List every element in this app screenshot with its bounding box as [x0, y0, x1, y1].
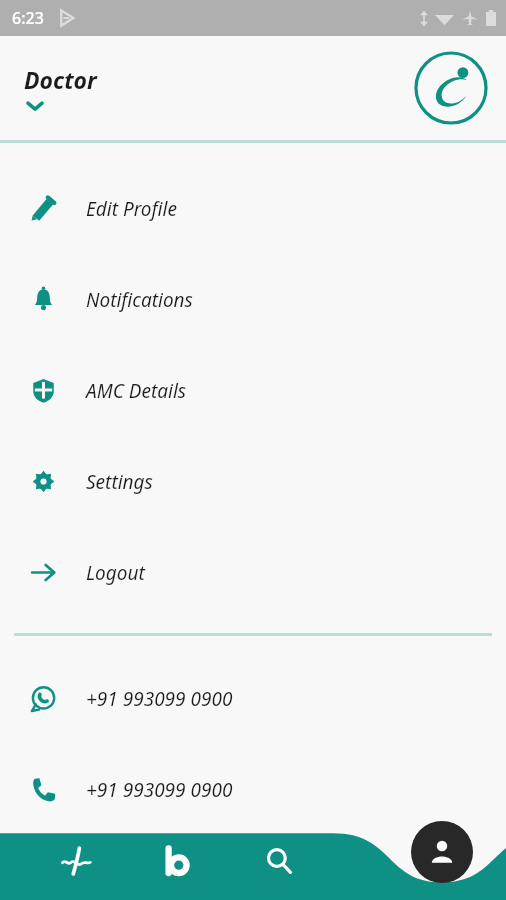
button[interactable]: Notifications [0, 254, 506, 345]
button[interactable]: +91 993099 0900 [0, 653, 506, 744]
staticText: Edit Profile [86, 196, 177, 222]
staticText: +91 993099 0900 [86, 686, 233, 712]
button[interactable]: Doctor [24, 62, 105, 115]
button[interactable]: Search [253, 835, 305, 887]
staticText: Settings [86, 469, 153, 495]
staticText: Notifications [86, 287, 193, 313]
staticText: Doctor [24, 64, 97, 95]
button[interactable]: Logout [0, 527, 506, 618]
button[interactable]: Settings [0, 436, 506, 527]
button[interactable]: Home [151, 835, 203, 887]
button[interactable]: +91 993099 0900 [0, 744, 506, 835]
other: Profile logo [414, 51, 488, 125]
staticText: Logout [86, 560, 145, 586]
staticText: +91 993099 0900 [86, 777, 233, 803]
staticText: 6:23 [12, 7, 44, 29]
button[interactable]: Signature [50, 835, 102, 887]
button[interactable]: Edit Profile [0, 163, 506, 254]
staticText: AMC Details [86, 378, 187, 404]
button[interactable]: AMC Details [0, 345, 506, 436]
button[interactable]: Profile [411, 821, 473, 883]
